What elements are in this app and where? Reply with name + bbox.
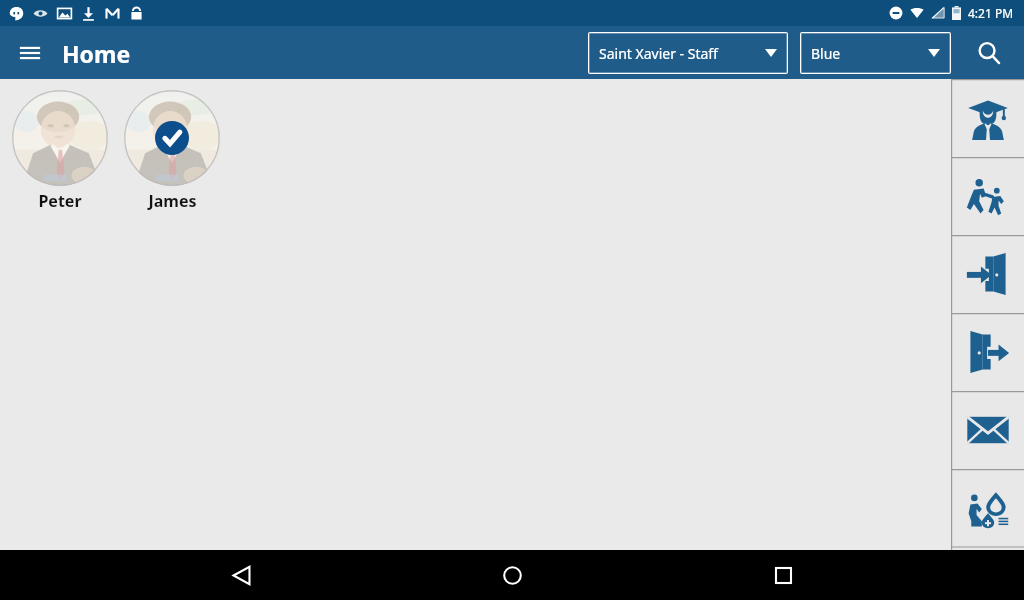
staticText: Peter [38, 190, 82, 212]
staticText: Home [62, 38, 131, 69]
button[interactable]: Students [951, 79, 1024, 157]
button[interactable]: James [122, 90, 222, 212]
button[interactable]: Health [951, 469, 1024, 547]
button[interactable]: Parent pickup [951, 157, 1024, 235]
button[interactable]: Sign in [951, 235, 1024, 313]
staticText: 4:21 PM [968, 5, 1014, 21]
staticText: James [148, 190, 197, 212]
button[interactable]: Back [211, 550, 271, 600]
button[interactable]: Saint Xavier - Staff [588, 32, 788, 74]
button[interactable]: Search [963, 27, 1015, 79]
button[interactable]: Peter [10, 90, 110, 212]
staticText: Blue [811, 44, 841, 63]
button[interactable]: Messages [951, 391, 1024, 469]
staticText: Saint Xavier - Staff [599, 44, 718, 63]
button[interactable]: Open navigation drawer [14, 37, 46, 69]
button[interactable]: Recent apps [753, 550, 813, 600]
button[interactable]: Sign out [951, 313, 1024, 391]
button[interactable]: Blue [800, 32, 951, 74]
button[interactable]: Home [482, 550, 542, 600]
